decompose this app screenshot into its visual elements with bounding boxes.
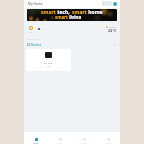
button[interactable]: Add scene: [29, 26, 33, 34]
button[interactable]: Filter: [112, 43, 117, 48]
staticText: AC Unit: [44, 61, 53, 64]
staticText: living: [68, 14, 82, 19]
staticText: Add: [29, 31, 33, 34]
button[interactable]: Account: [96, 132, 120, 144]
button[interactable]: Messages: [107, 1, 112, 6]
staticText: tech,: [56, 9, 72, 16]
staticText: smart: [41, 9, 56, 16]
staticText: home: [87, 9, 103, 16]
staticText: Sunny: [109, 25, 117, 28]
staticText: 24 °C: [108, 28, 117, 33]
button[interactable]: AC Unit: [26, 49, 71, 71]
staticText: All Devices: [27, 43, 41, 47]
staticText: Home: [33, 142, 39, 144]
staticText: Good morning: [27, 38, 42, 41]
button[interactable]: Home: [24, 132, 48, 144]
button[interactable]: smart: [27, 9, 117, 21]
staticText: My Home: [28, 2, 43, 6]
staticText: Automations: [79, 142, 90, 144]
staticText: smart: [72, 9, 87, 16]
staticText: Off: [47, 65, 51, 68]
staticText: smart: [55, 14, 68, 19]
button[interactable]: Add device: [112, 1, 117, 6]
button[interactable]: Automations: [72, 132, 96, 144]
staticText: Rooms: [57, 142, 63, 144]
button[interactable]: Scan: [102, 1, 107, 6]
staticText: Account: [105, 142, 112, 144]
button[interactable]: Rooms: [48, 132, 72, 144]
